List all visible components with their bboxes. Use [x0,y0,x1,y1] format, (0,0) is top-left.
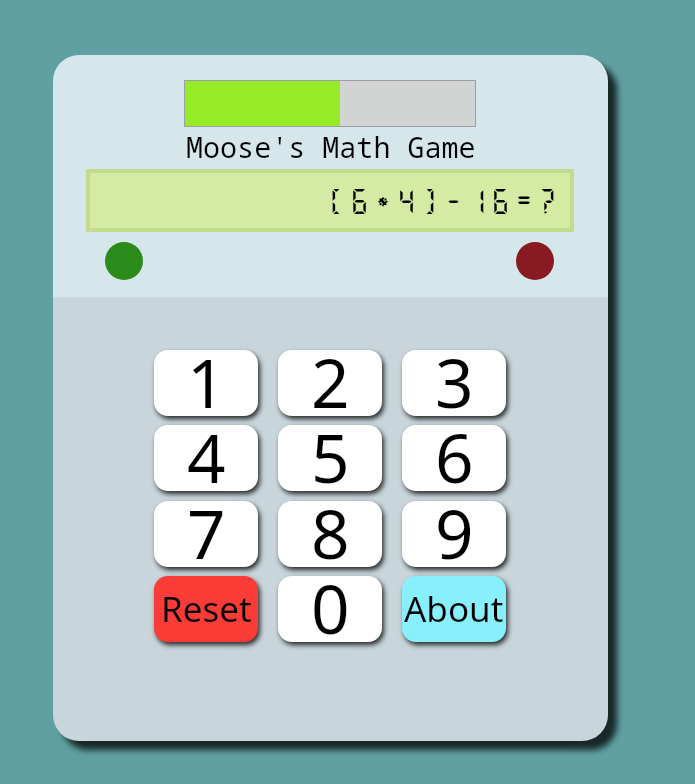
button[interactable]: 0 [278,576,382,642]
staticText: 0 [311,576,350,642]
button[interactable]: 7 [154,501,258,567]
staticText: (6*4)-16=? [326,185,562,217]
button[interactable]: 6 [402,425,506,491]
button[interactable]: 4 [154,425,258,491]
staticText: 9 [435,501,474,567]
other: Correct answers indicator [105,242,143,280]
button[interactable]: Reset [154,576,258,642]
staticText: 4 [187,425,226,491]
staticText: Reset [161,585,252,633]
staticText: Moose's Math Game [186,128,476,167]
button[interactable]: 8 [278,501,382,567]
staticText: 8 [311,501,350,567]
button[interactable]: 5 [278,425,382,491]
button[interactable]: 2 [278,350,382,416]
other: Wrong answers indicator [516,242,554,280]
staticText: 3 [435,350,474,416]
staticText: About [404,585,504,633]
staticText: 1 [187,350,226,416]
button[interactable]: 9 [402,501,506,567]
staticText: 7 [187,501,226,567]
staticText: 2 [311,350,350,416]
staticText: 6 [435,425,474,491]
button[interactable]: About [402,576,506,642]
button[interactable]: 1 [154,350,258,416]
staticText: 5 [311,425,350,491]
button[interactable]: 3 [402,350,506,416]
